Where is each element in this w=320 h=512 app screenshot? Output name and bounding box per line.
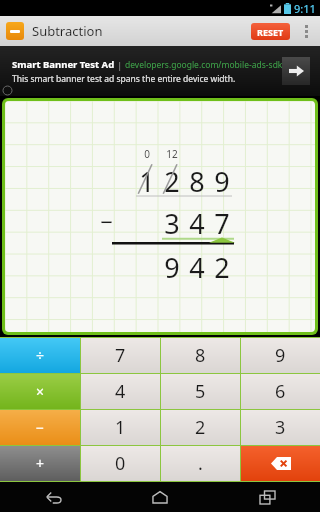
button[interactable]: 4: [81, 374, 160, 409]
button[interactable]: 4: [184, 249, 209, 281]
staticText: 6: [275, 379, 286, 404]
staticText: Subtraction: [32, 22, 103, 40]
staticText: ×: [36, 382, 45, 401]
staticText: 7: [115, 343, 126, 368]
staticText: developers.google.com/mobile-ads-sdk/: [125, 59, 286, 71]
button[interactable]: 7: [209, 205, 234, 237]
button[interactable]: 4: [184, 205, 209, 237]
button[interactable]: 1: [134, 163, 159, 195]
button[interactable]: +: [0, 446, 80, 481]
button[interactable]: 2: [161, 410, 240, 445]
staticText: 3: [164, 205, 180, 237]
staticText: 1: [115, 415, 126, 440]
button[interactable]: −: [0, 410, 80, 445]
button[interactable]: 0: [81, 446, 160, 481]
staticText: 5: [195, 379, 206, 404]
button[interactable]: Recent apps: [247, 482, 287, 512]
button[interactable]: 8: [184, 163, 209, 195]
button[interactable]: 8: [161, 338, 240, 373]
staticText: −: [36, 418, 45, 437]
button[interactable]: 6: [241, 374, 320, 409]
staticText: 1: [139, 163, 155, 195]
button[interactable]: 9: [241, 338, 320, 373]
staticText: 9: [214, 163, 230, 195]
staticText: 2: [214, 249, 230, 281]
button[interactable]: 5: [161, 374, 240, 409]
staticText: 9: [275, 343, 286, 368]
button[interactable]: Open ad: [282, 57, 310, 85]
staticText: 4: [189, 249, 205, 281]
button[interactable]: 2: [209, 249, 234, 281]
staticText: .: [198, 451, 203, 476]
staticText: ÷: [36, 346, 45, 365]
button[interactable]: ÷: [0, 338, 80, 373]
button[interactable]: 3: [159, 205, 184, 237]
button[interactable]: ×: [0, 374, 80, 409]
button[interactable]: Back: [33, 482, 73, 512]
button[interactable]: Backspace: [241, 446, 320, 481]
staticText: 4: [189, 205, 205, 237]
staticText: 7: [214, 205, 230, 237]
button[interactable]: .: [161, 446, 240, 481]
button[interactable]: 9: [209, 163, 234, 195]
staticText: 4: [115, 379, 126, 404]
staticText: −: [100, 206, 113, 236]
button[interactable]: 7: [81, 338, 160, 373]
staticText: 9: [164, 249, 180, 281]
button[interactable]: 9: [159, 249, 184, 281]
button[interactable]: 3: [241, 410, 320, 445]
button[interactable]: 2: [159, 163, 184, 195]
staticText: +: [36, 454, 45, 473]
staticText: 0: [144, 147, 150, 161]
staticText: 3: [275, 415, 286, 440]
staticText: Smart Banner Test Ad: [12, 58, 115, 71]
staticText: This smart banner test ad spans the enti…: [12, 73, 236, 85]
staticText: 0: [115, 451, 126, 476]
staticText: 8: [195, 343, 206, 368]
staticText: 9:11: [294, 1, 316, 16]
staticText: |: [115, 59, 125, 71]
button[interactable]: Home: [140, 482, 180, 512]
button[interactable]: More options: [298, 16, 314, 46]
button[interactable]: RESET: [251, 23, 290, 40]
button[interactable]: 1: [81, 410, 160, 445]
staticText: 2: [195, 415, 206, 440]
staticText: 12: [166, 147, 178, 161]
button[interactable]: Smart Banner Test Ad: [0, 46, 320, 96]
staticText: 8: [189, 163, 205, 195]
staticText: RESET: [257, 26, 284, 38]
staticText: 2: [164, 163, 180, 195]
